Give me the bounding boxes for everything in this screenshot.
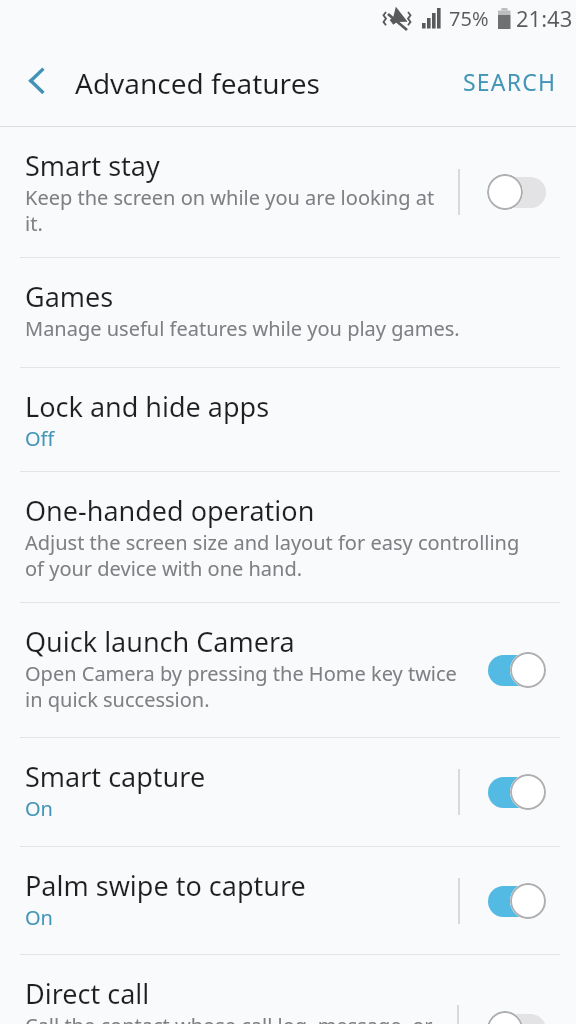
button[interactable]: SEARCH — [444, 46, 576, 117]
staticText: Quick launch Camera — [25, 623, 295, 660]
button[interactable]: Direct call — [0, 955, 576, 1024]
staticText: Smart stay — [25, 147, 160, 184]
button[interactable]: Games — [0, 258, 576, 367]
staticText: Manage useful features while you play ga… — [25, 315, 460, 342]
button[interactable]: Palm swipe to capture — [0, 847, 576, 954]
staticText: Palm swipe to capture — [25, 867, 306, 904]
staticText: Call the contact whose call log, message… — [25, 1012, 433, 1024]
button[interactable]: Smart capture — [0, 738, 576, 846]
staticText: 21:43 — [516, 3, 573, 33]
staticText: Games — [25, 278, 114, 315]
staticText: One-handed operation — [25, 492, 315, 529]
button[interactable] — [12, 53, 60, 109]
button[interactable]: One-handed operation — [0, 472, 576, 602]
staticText: On — [25, 795, 53, 822]
staticText: Keep the screen on while you are looking… — [25, 184, 446, 237]
staticText: Adjust the screen size and layout for ea… — [25, 529, 531, 582]
staticText: 75% — [449, 5, 489, 32]
staticText: Direct call — [25, 975, 150, 1012]
staticText: Smart capture — [25, 758, 206, 795]
button[interactable]: Quick launch Camera — [0, 603, 576, 737]
staticText: SEARCH — [463, 66, 557, 97]
staticText: On — [25, 904, 53, 931]
staticText: Open Camera by pressing the Home key twi… — [25, 660, 471, 713]
button[interactable]: Lock and hide apps — [0, 368, 576, 471]
staticText: Off — [25, 425, 55, 452]
button[interactable]: Smart stay — [0, 127, 576, 257]
staticText: Advanced features — [75, 64, 444, 102]
staticText: Lock and hide apps — [25, 388, 270, 425]
